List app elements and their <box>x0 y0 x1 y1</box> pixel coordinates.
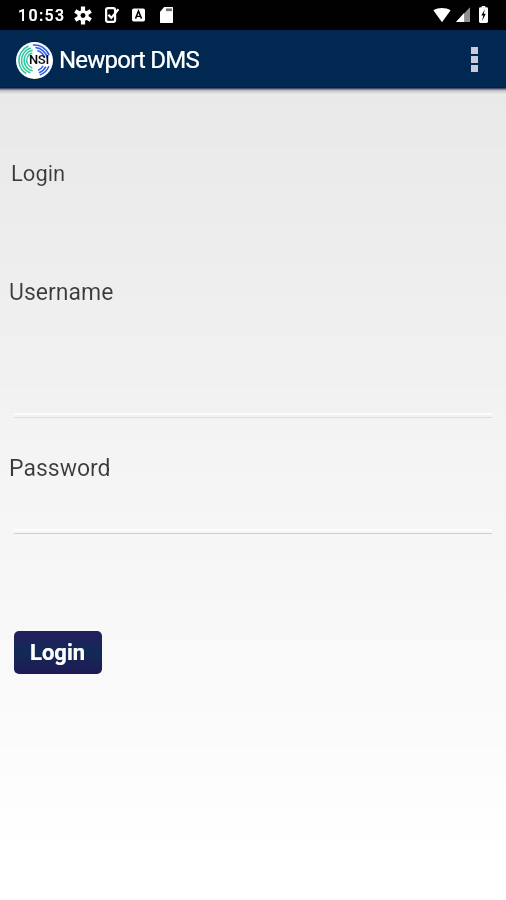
button[interactable]: Username field <box>0 272 506 418</box>
staticText: Newport DMS <box>59 46 199 74</box>
staticText: 10:53 <box>18 6 66 25</box>
staticText: Login <box>11 161 66 187</box>
staticText: Login <box>30 640 86 666</box>
button[interactable]: More options <box>452 37 496 81</box>
button[interactable]: Password field <box>0 448 506 534</box>
staticText: Username <box>9 279 114 306</box>
button[interactable]: Login <box>14 631 102 674</box>
staticText: NSI <box>29 52 50 67</box>
staticText: Password <box>9 455 111 482</box>
